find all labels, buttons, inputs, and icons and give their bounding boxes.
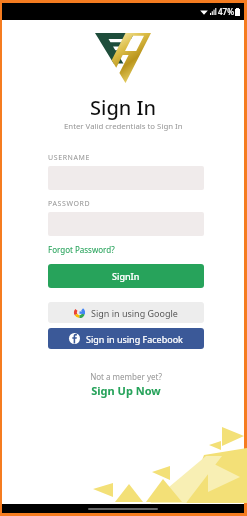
button[interactable]: Sign in using Facebook (48, 328, 204, 349)
staticText: Not a member yet? (48, 371, 204, 382)
button[interactable]: Forgot Password? (48, 244, 115, 255)
staticText: PASSWORD (48, 199, 91, 209)
button[interactable]: SignIn (48, 264, 204, 288)
staticText: Enter Valid credentials to Sign In (64, 121, 183, 132)
staticText: Sign In (90, 94, 157, 121)
staticText: Sign in using Facebook (86, 333, 183, 345)
staticText: 47% (218, 6, 234, 17)
button[interactable]: Sign in using Google (48, 302, 204, 323)
button[interactable]: Sign Up Now (48, 383, 204, 398)
staticText: Sign in using Google (91, 307, 178, 319)
staticText: SignIn (112, 270, 140, 282)
staticText: USERNAME (48, 153, 91, 163)
